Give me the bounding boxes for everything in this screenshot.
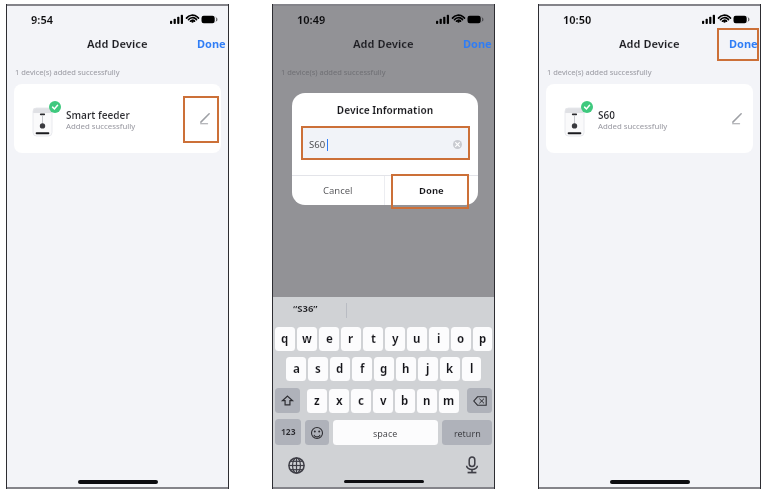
staticText: j [426,361,430,377]
button[interactable]: z [307,389,327,413]
button[interactable]: Edit device name [725,107,747,129]
staticText: v [380,393,387,409]
staticText: k [446,361,454,377]
staticText: c [358,393,364,409]
staticText: w [302,331,312,347]
button[interactable]: Smart feeder [14,84,221,153]
staticText: t [371,331,376,347]
staticText: s [315,361,321,377]
button[interactable]: s [308,357,328,381]
staticText: 123 [281,426,296,438]
staticText: Add Device [619,36,680,51]
staticText: S60 [598,108,615,122]
staticText: y [392,331,399,347]
button[interactable]: c [351,389,371,413]
staticText: Add Device [353,36,414,51]
button[interactable]: f [352,357,372,381]
button[interactable]: o [451,327,471,351]
staticText: Done [729,36,758,51]
button[interactable]: space [333,420,438,445]
button[interactable]: S60 [546,84,753,153]
staticText: Add Device [87,36,148,51]
button[interactable]: Backspace [467,388,492,413]
button[interactable]: q [275,327,295,351]
staticText: Cancel [323,184,353,197]
staticText: x [336,393,343,409]
button[interactable]: j [418,357,438,381]
button[interactable]: m [439,389,459,413]
staticText: S60 [309,138,326,151]
staticText: space [373,427,398,439]
staticText: l [470,361,474,377]
staticText: d [336,361,344,377]
button[interactable]: h [396,357,416,381]
button[interactable]: x [329,389,349,413]
staticText: p [479,331,487,347]
staticText: g [380,361,388,377]
staticText: 1 device(s) added successfully [15,67,120,77]
staticText: a [293,361,300,377]
staticText: 10:49 [297,12,326,27]
staticText: f [360,361,365,377]
button[interactable]: Edit device name [193,107,215,129]
button[interactable]: p [473,327,492,351]
button[interactable]: 123 [275,419,301,445]
button[interactable]: i [429,327,449,351]
button[interactable]: Shift [275,388,300,413]
staticText: Smart feeder [66,108,130,122]
button[interactable]: Done [727,33,760,54]
button[interactable]: t [363,327,383,351]
staticText: 9:54 [31,12,53,27]
button[interactable]: n [417,389,437,413]
staticText: r [348,331,354,347]
staticText: Added successfully [598,121,668,132]
button[interactable]: k [440,357,460,381]
staticText: Done [419,184,444,197]
button[interactable]: a [286,357,306,381]
staticText: Device Information [292,103,478,117]
staticText: h [402,361,410,377]
button[interactable]: g [374,357,394,381]
button[interactable]: S60 [301,128,469,159]
button[interactable]: Dictate [461,454,483,476]
button[interactable]: Change keyboard [285,454,307,476]
button[interactable]: b [395,389,415,413]
button[interactable]: Emoji [305,420,329,445]
button[interactable]: Cancel [292,176,384,205]
staticText: e [326,331,333,347]
staticText: z [314,393,320,409]
button[interactable]: y [385,327,405,351]
staticText: Done [463,36,492,51]
button[interactable]: w [297,327,317,351]
staticText: 1 device(s) added successfully [547,67,652,77]
button[interactable]: Done [385,176,478,205]
staticText: b [401,393,409,409]
staticText: o [457,331,465,347]
staticText: 1 device(s) added successfully [281,67,386,77]
staticText: q [281,331,289,347]
staticText: “S36” [293,302,318,315]
staticText: n [423,393,431,409]
staticText: Done [197,36,226,51]
staticText: m [443,393,455,409]
button[interactable]: return [442,420,492,445]
staticText: return [454,427,481,439]
staticText: u [413,331,421,347]
button[interactable]: Done [195,33,228,54]
button[interactable]: e [319,327,339,351]
button[interactable]: d [330,357,350,381]
button[interactable]: l [462,357,481,381]
button[interactable]: u [407,327,427,351]
staticText: i [437,331,441,347]
staticText: 10:50 [563,12,592,27]
button[interactable]: v [373,389,393,413]
staticText: Added successfully [66,121,136,132]
button[interactable]: r [341,327,361,351]
button[interactable]: Done [461,33,494,54]
